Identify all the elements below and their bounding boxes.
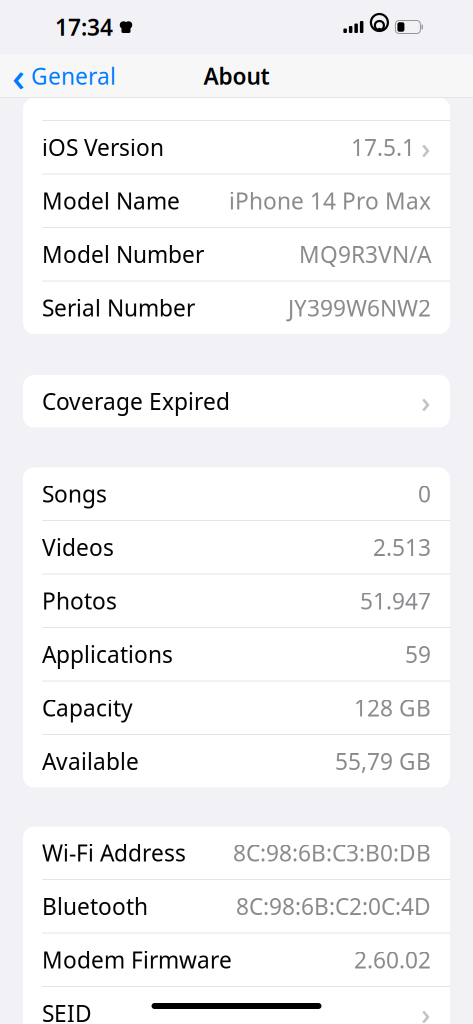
- staticText: Capacity: [42, 693, 133, 723]
- button[interactable]: SEID: [23, 987, 450, 1024]
- staticText: 0: [418, 479, 431, 509]
- staticText: 55,79 GB: [335, 746, 431, 776]
- button[interactable]: Bluetooth: [23, 880, 450, 932]
- button[interactable]: iOS Version: [23, 121, 450, 173]
- staticText: 2.60.02: [354, 945, 431, 975]
- staticText: 17:34: [55, 12, 113, 42]
- staticText: JY399W6NW2: [288, 293, 431, 323]
- staticText: Videos: [42, 532, 114, 562]
- staticText: 8C:98:6B:C3:B0:DB: [233, 838, 431, 868]
- staticText: Wi-Fi Address: [42, 838, 186, 868]
- staticText: 128 GB: [354, 693, 431, 723]
- button[interactable]: Model Number: [23, 228, 450, 280]
- staticText: About: [203, 61, 269, 91]
- staticText: 2.513: [373, 532, 431, 562]
- staticText: 59: [405, 639, 431, 669]
- button[interactable]: Songs: [23, 467, 450, 520]
- button[interactable]: Applications: [23, 628, 450, 680]
- button[interactable]: ‹: [0, 54, 128, 98]
- staticText: ›: [421, 382, 431, 421]
- staticText: ‹: [12, 49, 25, 102]
- staticText: MQ9R3VN/A: [299, 239, 431, 269]
- button[interactable]: Photos: [23, 574, 450, 627]
- staticText: 17.5.1: [351, 132, 415, 162]
- staticText: iPhone 14 Pro Max: [229, 186, 431, 216]
- staticText: SEID: [42, 998, 92, 1024]
- staticText: Model Number: [42, 239, 204, 269]
- button[interactable]: Model Name: [23, 174, 450, 227]
- staticText: Model Name: [42, 186, 180, 216]
- button[interactable]: Available: [23, 735, 450, 787]
- button[interactable]: Serial Number: [23, 281, 450, 334]
- button[interactable]: Capacity: [23, 681, 450, 734]
- staticText: iOS Version: [42, 132, 164, 162]
- button[interactable]: Videos: [23, 521, 450, 573]
- staticText: Serial Number: [42, 293, 195, 323]
- button[interactable]: Coverage Expired: [23, 375, 450, 427]
- staticText: Available: [42, 746, 139, 776]
- staticText: Songs: [42, 479, 107, 509]
- staticText: ›: [421, 128, 431, 167]
- button[interactable]: Modem Firmware: [23, 933, 450, 986]
- staticText: General: [31, 61, 116, 91]
- staticText: Modem Firmware: [42, 945, 232, 975]
- staticText: 51.947: [360, 586, 431, 616]
- staticText: Applications: [42, 639, 173, 669]
- staticText: 8C:98:6B:C2:0C:4D: [236, 891, 431, 921]
- staticText: Bluetooth: [42, 891, 148, 921]
- staticText: Photos: [42, 586, 117, 616]
- button[interactable]: Wi-Fi Address: [23, 826, 450, 879]
- staticText: Coverage Expired: [42, 386, 230, 416]
- staticText: ›: [421, 994, 431, 1024]
